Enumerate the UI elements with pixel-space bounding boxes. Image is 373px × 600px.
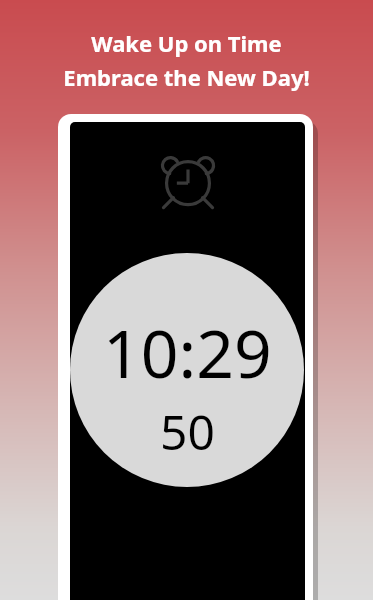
staticText: 10:29 bbox=[103, 307, 272, 397]
staticText: 50 bbox=[160, 399, 215, 464]
button[interactable]: Alarm bbox=[70, 122, 305, 600]
button[interactable]: Alarm bbox=[156, 147, 220, 211]
staticText: Embrace the New Day! bbox=[63, 62, 310, 92]
staticText: Wake Up on Time bbox=[91, 28, 282, 58]
